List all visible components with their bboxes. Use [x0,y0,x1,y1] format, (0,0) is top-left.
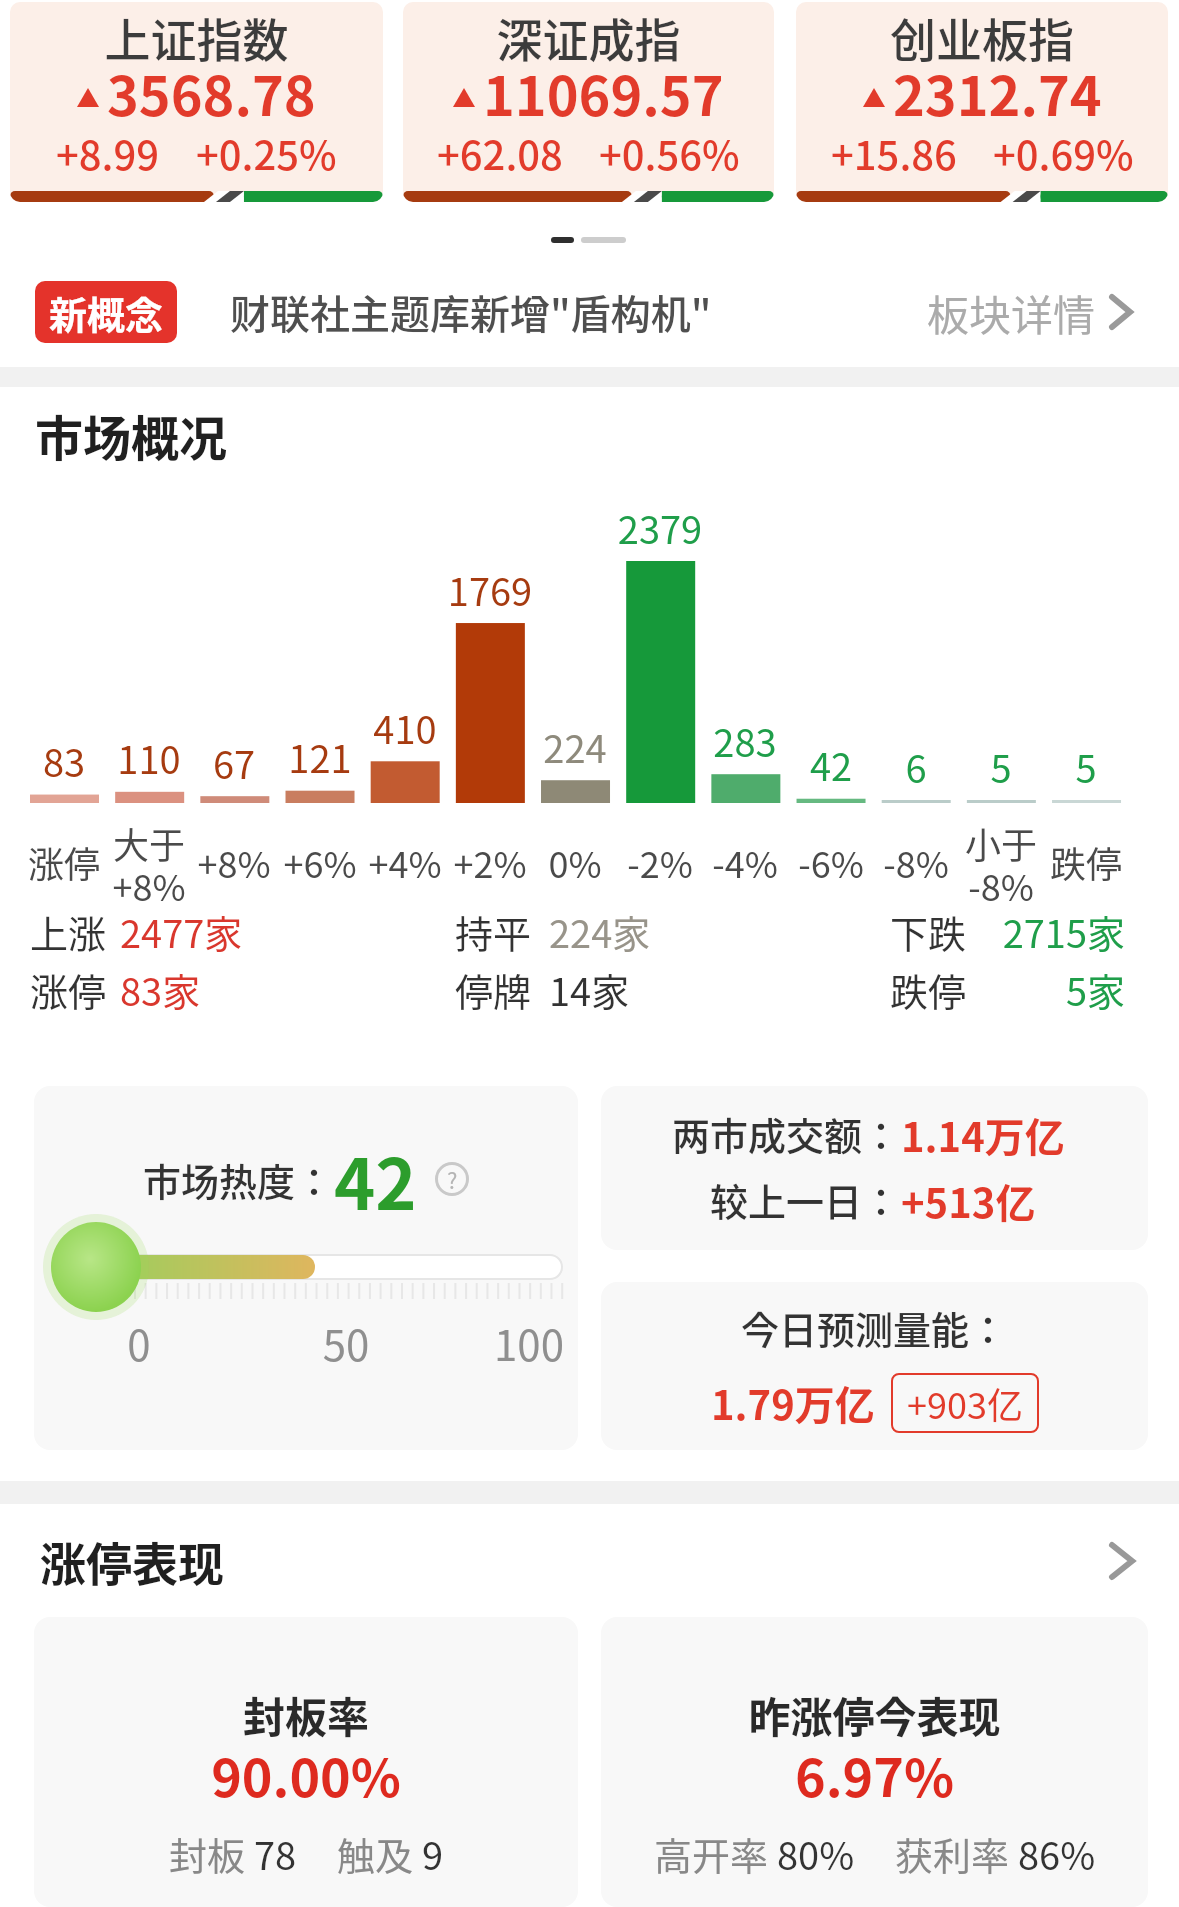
staticText: 下跌 [890,904,980,959]
staticText: +2% [430,836,550,888]
staticText: 0 [109,1312,169,1373]
staticText: +8% [174,836,294,888]
button[interactable]: 新概念 [0,262,1179,362]
staticText: 121 [260,729,380,784]
staticText: 1.14万亿 [901,1106,1065,1164]
staticText: 2477家 [120,904,380,959]
staticText: 78 [254,1826,297,1881]
staticText: 1769 [430,562,550,617]
staticText: 持平 [455,904,545,959]
staticText: 市场概况 [35,400,335,470]
staticText: 涨停表现 [40,1528,224,1595]
staticText: 停牌 [455,962,545,1017]
staticText: 深证成指 [403,4,774,71]
staticText: 11069.57 [483,53,724,131]
staticText: 财联社主题库新增"盾构机" [230,283,712,341]
button[interactable]: 封板率 [34,1617,578,1907]
staticText: 5 [941,739,1061,794]
staticText: 获利率 [895,1826,1018,1881]
staticText: 14家 [549,962,789,1017]
staticText: 2379 [600,500,720,555]
staticText: 110 [89,730,209,785]
staticText: 5家 [860,962,1125,1017]
staticText: 较上一日： [710,1172,901,1227]
staticText: -6% [771,836,891,888]
staticText: 小于 -8% [941,817,1061,911]
staticText: +4% [345,836,465,888]
staticText: 大于 +8% [89,817,209,911]
button[interactable]: 昨涨停今表现 [601,1617,1148,1907]
staticText: 410 [345,700,465,755]
staticText: 90.00% [34,1737,578,1812]
staticText: 283 [685,713,805,768]
staticText: ? [447,1163,458,1195]
staticText: +15.86 [831,124,957,182]
staticText: +8.99 [56,124,160,182]
staticText: -4% [685,836,805,888]
staticText: 6 [856,739,976,794]
staticText: 封板 [169,1826,254,1881]
staticText: 67 [174,735,294,790]
staticText: 市场热度： [143,1152,334,1207]
staticText: 触及 [337,1826,422,1881]
staticText: +513亿 [901,1172,1036,1230]
staticText: -2% [600,836,720,888]
staticText: 6.97% [601,1737,1148,1812]
button[interactable]: 深证成指 [403,2,774,202]
staticText: 100 [489,1312,569,1373]
staticText: 224 [515,719,635,774]
button[interactable]: 两市成交额： [601,1086,1148,1250]
staticText: 创业板指 [796,4,1168,71]
staticText: +903亿 [907,1377,1023,1429]
staticText: 封板率 [34,1684,578,1745]
button[interactable]: 今日预测量能： [601,1282,1148,1450]
staticText: 5 [1026,739,1146,794]
staticText: 上证指数 [10,4,383,71]
staticText: 上涨 [30,904,120,959]
staticText: 高开率 [654,1826,777,1881]
button[interactable]: 上证指数 [10,2,383,202]
staticText: -8% [856,836,976,888]
staticText: +0.25% [196,124,337,182]
staticText: 新概念 [49,285,164,340]
staticText: +0.69% [993,124,1134,182]
button[interactable]: 涨停表现 [0,1528,1179,1594]
staticText: 2312.74 [893,53,1102,131]
staticText: 2715家 [860,904,1125,959]
staticText: 板块详情 [927,282,1096,343]
staticText: 3568.78 [107,53,316,131]
staticText: 83 [4,733,124,788]
button[interactable]: 创业板指 [796,2,1168,202]
staticText: 9 [422,1826,444,1881]
staticText: 1.79万亿 [711,1374,875,1432]
staticText: 83家 [120,962,380,1017]
staticText: 80% [777,1826,855,1881]
staticText: 跌停 [1026,836,1146,888]
button[interactable]: 市场热度： [34,1086,578,1450]
staticText: 42 [771,737,891,792]
staticText: 昨涨停今表现 [601,1684,1148,1745]
staticText: 42 [334,1129,417,1230]
staticText: 0% [515,836,635,888]
staticText: 224家 [549,904,789,959]
staticText: 50 [316,1312,376,1373]
staticText: 今日预测量能： [741,1300,1008,1355]
staticText: +0.56% [599,124,740,182]
staticText: +6% [260,836,380,888]
staticText: +62.08 [437,124,563,182]
staticText: 涨停 [4,836,124,888]
staticText: 涨停 [30,962,120,1017]
staticText: 86% [1018,1826,1096,1881]
staticText: 跌停 [890,962,980,1017]
staticText: 两市成交额： [672,1106,901,1161]
